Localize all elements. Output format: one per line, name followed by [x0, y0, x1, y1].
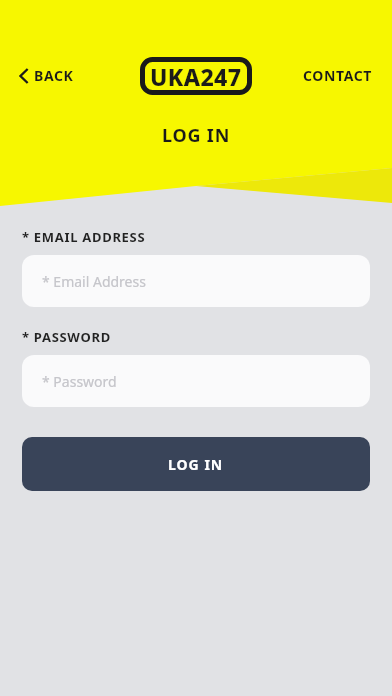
staticText: UKA247: [150, 61, 242, 92]
staticText: LOG IN: [168, 455, 224, 474]
staticText: * Password: [42, 372, 117, 391]
button[interactable]: UKA247 home: [140, 57, 252, 95]
staticText: * PASSWORD: [22, 328, 111, 346]
staticText: CONTACT: [303, 66, 372, 85]
button[interactable]: LOG IN: [22, 437, 370, 491]
button[interactable]: * Password: [22, 355, 370, 407]
staticText: LOG IN: [162, 123, 231, 148]
staticText: * Email Address: [42, 272, 146, 291]
button[interactable]: * Email Address: [22, 255, 370, 307]
staticText: * EMAIL ADDRESS: [22, 228, 146, 246]
button[interactable]: CONTACT: [297, 62, 378, 89]
staticText: BACK: [34, 66, 74, 85]
button[interactable]: BACK: [14, 62, 80, 89]
